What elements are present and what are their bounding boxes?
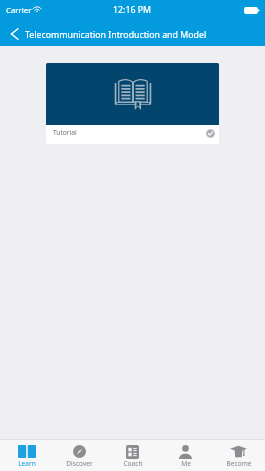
staticText: Carrier — [6, 5, 32, 16]
staticText: 12:16 PM — [113, 4, 152, 16]
staticText: Coach — [123, 459, 143, 468]
button[interactable]: Tutorial — [46, 63, 219, 144]
button[interactable]: Coach — [106, 440, 159, 471]
button[interactable]: Discover — [53, 440, 106, 471]
staticText: Telecommunication Introduction and Model — [25, 29, 207, 41]
button[interactable]: Become — [212, 440, 265, 471]
button[interactable]: Me — [159, 440, 212, 471]
staticText: Become — [226, 459, 252, 468]
staticText: Tutorial — [53, 128, 77, 137]
staticText: Discover — [66, 459, 93, 468]
staticText: Learn — [18, 459, 36, 468]
staticText: Me — [181, 459, 191, 468]
button[interactable]: Learn — [0, 440, 53, 471]
button[interactable]: Back — [0, 20, 25, 46]
